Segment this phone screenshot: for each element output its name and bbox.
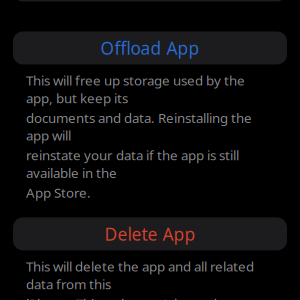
staticText: Offload App	[100, 36, 199, 59]
staticText: reinstate your data if the app is still …	[26, 146, 239, 182]
button[interactable]: Delete App	[13, 217, 287, 250]
staticText: App Store.	[26, 184, 91, 201]
staticText: This will delete the app and all related…	[26, 257, 254, 293]
button[interactable]: Documents & Data	[13, 0, 287, 1]
staticText: Delete App	[104, 222, 195, 245]
button[interactable]: Offload App	[13, 31, 287, 64]
staticText: This will free up storage used by the ap…	[26, 71, 245, 107]
staticText: iPhone. This action can’t be undone.	[26, 295, 245, 300]
staticText: documents and data. Reinstalling the app…	[26, 109, 252, 144]
